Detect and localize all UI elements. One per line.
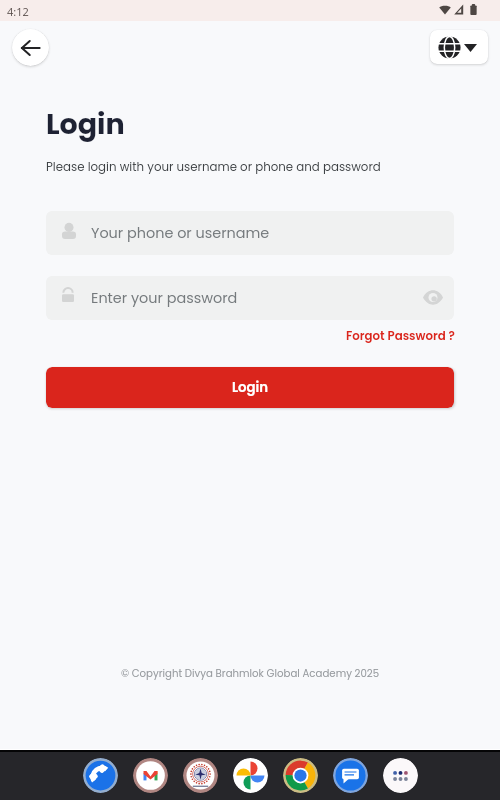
staticText: © Copyright Divya Brahmlok Global Academ…: [0, 666, 500, 680]
button[interactable]: Enter your password: [46, 276, 454, 320]
staticText: Your phone or username: [91, 223, 270, 243]
button[interactable]: Forgot Password ?: [346, 328, 455, 345]
staticText: 4:12: [7, 4, 29, 19]
button[interactable]: Photos: [233, 758, 268, 793]
button[interactable]: All apps: [383, 758, 418, 793]
staticText: Login: [232, 378, 269, 397]
button[interactable]: Login: [46, 367, 454, 408]
staticText: Forgot Password ?: [346, 328, 455, 345]
staticText: Enter your password: [91, 288, 238, 308]
staticText: Please login with your username or phone…: [46, 159, 381, 176]
button[interactable]: Gmail: [133, 758, 168, 793]
button[interactable]: Academy: [183, 758, 218, 793]
button[interactable]: Your phone or username: [46, 211, 454, 255]
button[interactable]: Messages: [333, 758, 368, 793]
button[interactable]: Back: [12, 29, 49, 66]
button[interactable]: Chrome: [283, 758, 318, 793]
staticText: Login: [46, 104, 125, 144]
button[interactable]: Change language: [430, 30, 488, 64]
button[interactable]: Phone: [83, 758, 118, 793]
